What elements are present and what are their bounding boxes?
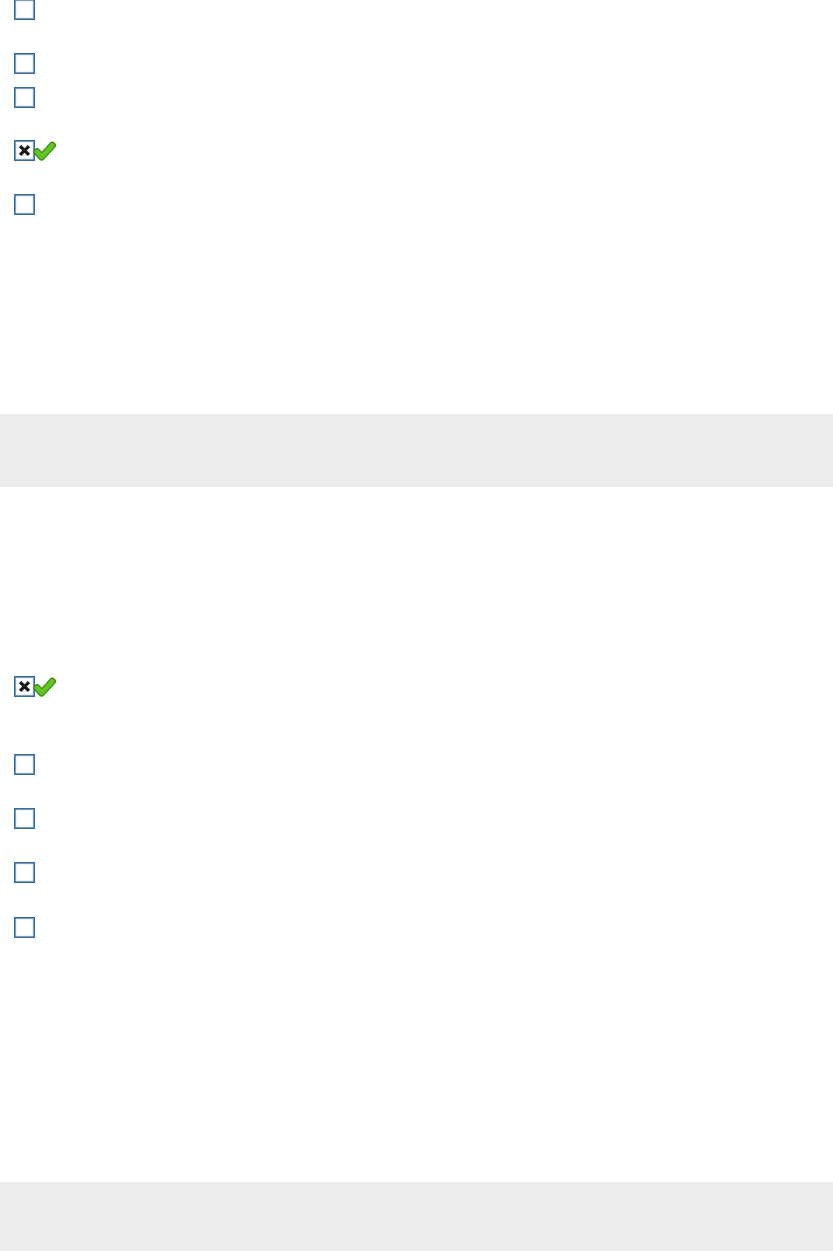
button[interactable]: Broken image [14, 87, 35, 108]
button[interactable]: Broken image with verified badge [14, 140, 53, 161]
button[interactable]: Broken image [14, 0, 35, 20]
button[interactable]: Broken image [14, 917, 35, 938]
button[interactable]: Broken image [14, 53, 35, 74]
button[interactable]: Broken image [14, 754, 35, 775]
button[interactable]: Broken image [14, 808, 35, 829]
button[interactable]: Broken image with verified badge [14, 676, 53, 697]
button[interactable]: Broken image [14, 194, 35, 215]
button[interactable]: Broken image [14, 862, 35, 883]
